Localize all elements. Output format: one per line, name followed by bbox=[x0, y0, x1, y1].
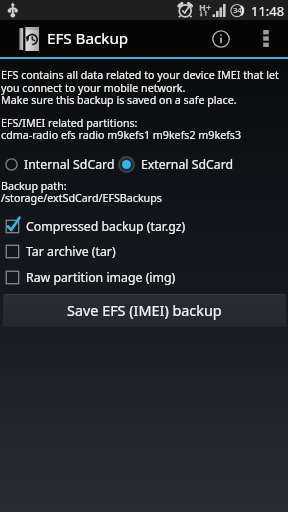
staticText: 34 bbox=[233, 5, 242, 15]
button[interactable]: Raw partition image (img) bbox=[0, 266, 288, 289]
button[interactable]: Compressed backup (tar.gz) bbox=[0, 215, 288, 238]
staticText: /storage/extSdCard/EFSBackups bbox=[1, 191, 162, 206]
staticText: Backup path: bbox=[1, 179, 67, 194]
button[interactable]: Tar archive (tar) bbox=[0, 240, 288, 263]
staticText: Save EFS (IMEI) backup bbox=[67, 301, 222, 321]
staticText: 11:48 bbox=[251, 2, 285, 20]
staticText: cdma-radio efs radio m9kefs1 m9kefs2 m9k… bbox=[1, 128, 242, 143]
staticText: Compressed backup (tar.gz) bbox=[26, 218, 186, 235]
staticText: Raw partition image (img) bbox=[26, 269, 176, 286]
button[interactable]: Save EFS (IMEI) backup bbox=[3, 294, 286, 327]
staticText: EFS Backup bbox=[47, 28, 129, 49]
button[interactable]: External SdCard bbox=[115, 153, 234, 176]
button[interactable]: Internal SdCard bbox=[0, 153, 115, 176]
staticText: EFS contains all data related to your de… bbox=[1, 68, 286, 95]
staticText: EFS/IMEI related partitions: bbox=[1, 116, 138, 131]
staticText: Make sure this backup is saved on a safe… bbox=[1, 93, 237, 108]
staticText: Internal SdCard bbox=[24, 156, 115, 173]
button[interactable]: More options bbox=[251, 20, 280, 57]
staticText: H+ bbox=[199, 1, 212, 13]
staticText: Tar archive (tar) bbox=[26, 243, 116, 260]
staticText: External SdCard bbox=[141, 156, 234, 173]
button[interactable]: Info bbox=[203, 20, 239, 57]
